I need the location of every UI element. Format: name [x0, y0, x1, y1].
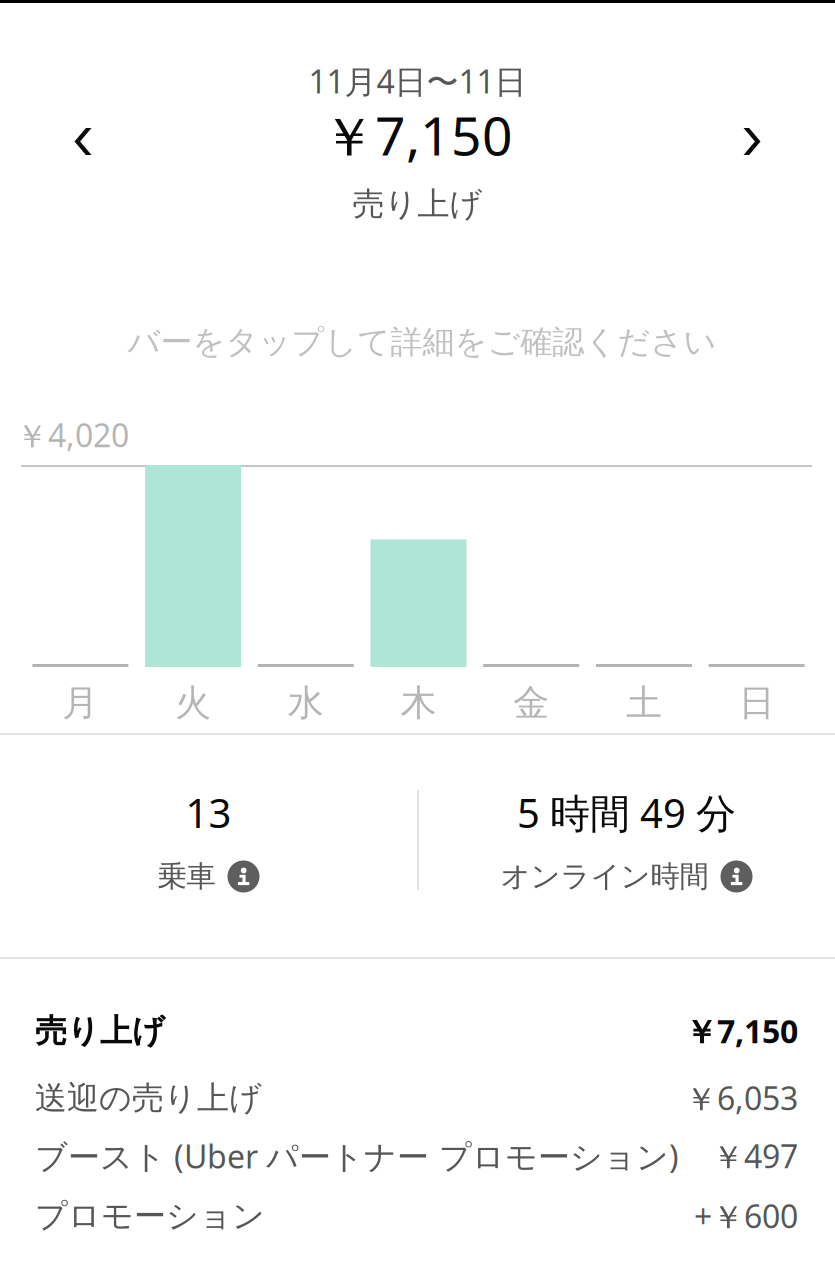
staticText: ￥497	[712, 1135, 798, 1177]
staticText: 売り上げ	[352, 184, 482, 224]
staticText: 月	[62, 681, 98, 725]
button[interactable]: 木 曜日の売り上げ	[370, 539, 466, 667]
staticText: 送迎の売り上げ	[35, 1078, 262, 1118]
button[interactable]: 送迎の売り上げ	[35, 1078, 798, 1118]
staticText: 乗車	[157, 858, 215, 894]
staticText: バーをタップして詳細をご確認ください	[127, 322, 716, 362]
staticText: ￥7,150	[322, 99, 513, 171]
button[interactable]: 乗車 13	[0, 793, 417, 893]
button[interactable]: ブースト (Uber パートナー プロモーション)	[35, 1136, 798, 1176]
staticText: オンライン時間	[500, 858, 708, 894]
staticText: ￥7,150	[685, 1010, 798, 1052]
button[interactable]: プロモーション	[35, 1196, 798, 1236]
staticText: 土	[626, 681, 662, 725]
staticText: 13	[185, 786, 231, 839]
button[interactable]: 次の週	[722, 107, 782, 176]
staticText: プロモーション	[35, 1196, 265, 1236]
staticText: 5 時間 49 分	[517, 786, 736, 839]
staticText: 木	[400, 681, 436, 725]
staticText: ￥6,053	[685, 1077, 798, 1119]
staticText: 日	[739, 681, 775, 725]
staticText: 金	[513, 681, 549, 725]
staticText: +￥600	[694, 1195, 798, 1237]
button[interactable]: 売り上げ	[35, 1011, 798, 1051]
button[interactable]: 前の週	[53, 107, 113, 176]
staticText: 水	[288, 681, 324, 725]
staticText: ブースト (Uber パートナー プロモーション)	[35, 1135, 679, 1177]
staticText: ￥4,020	[16, 414, 129, 456]
staticText: 火	[175, 681, 211, 725]
button[interactable]: オンライン時間 5 時間 49 分	[418, 793, 835, 893]
staticText: 売り上げ	[35, 1011, 165, 1051]
staticText: 11月4日〜11日	[308, 60, 526, 102]
